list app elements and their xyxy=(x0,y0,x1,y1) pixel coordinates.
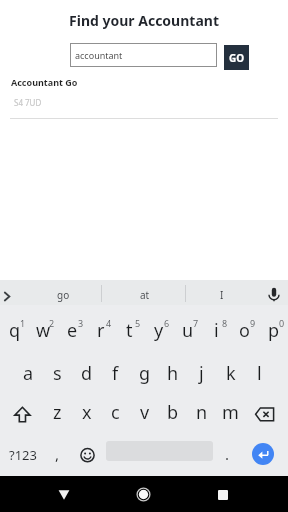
staticText: , xyxy=(55,444,60,464)
button[interactable] xyxy=(76,444,99,467)
button[interactable]: d xyxy=(72,354,101,392)
staticText: 3 xyxy=(78,317,84,329)
button[interactable] xyxy=(7,400,38,429)
staticText: I xyxy=(220,288,224,302)
button[interactable]: ?123 xyxy=(3,443,43,467)
staticText: m xyxy=(222,400,239,425)
staticText: o xyxy=(239,318,250,343)
staticText: 1 xyxy=(20,317,26,329)
button[interactable]: o xyxy=(230,311,259,349)
staticText: d xyxy=(81,361,93,386)
staticText: 7 xyxy=(193,317,199,329)
staticText: v xyxy=(140,400,150,425)
button[interactable] xyxy=(208,480,238,510)
button[interactable]: t xyxy=(115,311,144,349)
staticText: Accountant Go xyxy=(11,76,78,88)
button[interactable] xyxy=(263,280,285,305)
button[interactable]: y xyxy=(144,311,173,349)
staticText: n xyxy=(196,400,208,425)
staticText: . xyxy=(225,444,230,464)
button[interactable]: at xyxy=(125,282,165,307)
staticText: ?123 xyxy=(9,446,37,464)
button[interactable]: g xyxy=(130,354,159,392)
button[interactable]: r xyxy=(86,311,115,349)
staticText: g xyxy=(139,361,151,386)
button[interactable]: e xyxy=(58,311,87,349)
button[interactable]: i xyxy=(202,311,231,349)
staticText: b xyxy=(167,400,179,425)
button[interactable] xyxy=(0,280,20,305)
button[interactable] xyxy=(49,480,79,510)
staticText: 6 xyxy=(164,317,170,329)
staticText: 2 xyxy=(49,317,55,329)
button[interactable]: h xyxy=(158,354,187,392)
button[interactable]: b xyxy=(158,393,187,431)
button[interactable]: I xyxy=(202,282,242,307)
staticText: k xyxy=(226,361,236,386)
staticText: c xyxy=(111,400,120,425)
staticText: 9 xyxy=(250,317,256,329)
staticText: a xyxy=(23,361,34,386)
staticText: t xyxy=(126,318,133,343)
staticText: Find your Accountant xyxy=(0,11,288,30)
button[interactable]: w xyxy=(29,311,58,349)
staticText: y xyxy=(154,318,164,343)
staticText: GO xyxy=(229,51,245,65)
button[interactable]: q xyxy=(0,311,29,349)
button[interactable]: . xyxy=(213,435,242,473)
button[interactable]: j xyxy=(187,354,216,392)
button[interactable]: k xyxy=(216,354,245,392)
staticText: s xyxy=(53,361,62,386)
staticText: 5 xyxy=(135,317,141,329)
button[interactable]: v xyxy=(130,393,159,431)
button[interactable]: go xyxy=(43,282,83,307)
staticText: 8 xyxy=(222,317,228,329)
staticText: z xyxy=(53,400,62,425)
staticText: 0 xyxy=(279,317,285,329)
staticText: S4 7UD xyxy=(14,97,42,108)
button[interactable]: s xyxy=(43,354,72,392)
button[interactable]: x xyxy=(72,393,101,431)
button[interactable]: p xyxy=(259,311,288,349)
button[interactable]: accountant xyxy=(70,43,217,67)
staticText: accountant xyxy=(75,49,123,61)
button[interactable]: Accountant Go xyxy=(0,76,288,108)
button[interactable]: a xyxy=(14,354,43,392)
staticText: h xyxy=(167,361,179,386)
button[interactable]: m xyxy=(216,393,245,431)
staticText: x xyxy=(82,400,92,425)
staticText: i xyxy=(214,318,219,343)
staticText: f xyxy=(112,361,119,386)
button[interactable]: f xyxy=(101,354,130,392)
staticText: at xyxy=(140,288,150,302)
button[interactable]: GO xyxy=(224,45,249,70)
staticText: r xyxy=(97,318,105,343)
button[interactable]: l xyxy=(245,354,274,392)
staticText: go xyxy=(57,288,70,302)
button[interactable]: c xyxy=(101,393,130,431)
button[interactable]: n xyxy=(187,393,216,431)
button[interactable]: , xyxy=(43,435,72,473)
button[interactable]: z xyxy=(43,393,72,431)
staticText: l xyxy=(257,361,262,386)
staticText: w xyxy=(36,318,51,343)
button[interactable] xyxy=(249,400,280,429)
staticText: e xyxy=(67,318,78,343)
staticText: j xyxy=(199,361,204,386)
button[interactable] xyxy=(252,443,274,465)
staticText: u xyxy=(182,318,194,343)
button[interactable] xyxy=(128,479,159,510)
staticText: q xyxy=(9,318,21,343)
staticText: 4 xyxy=(106,317,112,329)
staticText: p xyxy=(268,318,280,343)
button[interactable]: u xyxy=(173,311,202,349)
